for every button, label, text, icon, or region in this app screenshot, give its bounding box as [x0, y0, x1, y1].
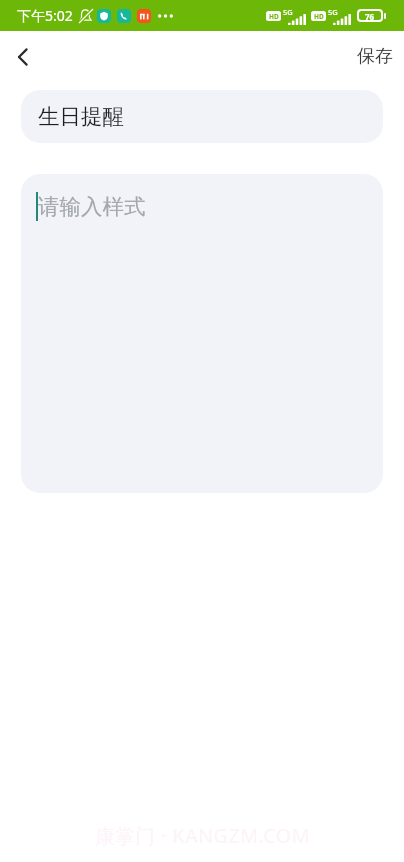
- staticText: 康掌门 · KANGZM.COM: [95, 822, 310, 849]
- staticText: 生日提醒: [38, 103, 124, 130]
- button[interactable]: 保存: [349, 37, 401, 76]
- staticText: 下午5:02: [17, 6, 73, 25]
- staticText: HD: [314, 12, 324, 21]
- button[interactable]: 生日提醒: [21, 90, 383, 143]
- staticText: 保存: [357, 45, 393, 68]
- staticText: 请输入样式: [38, 193, 146, 220]
- staticText: 5G: [283, 7, 293, 17]
- staticText: 76: [365, 11, 375, 20]
- button[interactable]: Back: [0, 34, 46, 80]
- staticText: HD: [269, 12, 279, 21]
- button[interactable]: 请输入样式: [21, 174, 383, 493]
- staticText: 5G: [328, 7, 338, 17]
